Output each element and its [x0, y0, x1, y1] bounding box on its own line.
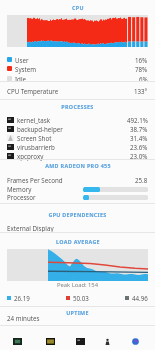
staticText: Peak Load: 154	[57, 281, 99, 289]
staticText: 492.1%	[127, 116, 148, 124]
staticText: 23.6%	[130, 143, 148, 151]
button[interactable]: xpcproxy	[0, 151, 155, 160]
staticText: AMD RADEON PRO 455	[45, 162, 111, 169]
staticText: Screen Shot	[17, 134, 52, 142]
button[interactable]: Processor	[0, 193, 155, 201]
button[interactable]: 24 minutes	[0, 313, 155, 322]
button[interactable]: Terminal	[10, 334, 24, 348]
button[interactable]: Frames Per Second	[0, 175, 155, 184]
staticText: 25.8	[135, 176, 148, 184]
staticText: System	[15, 65, 37, 73]
staticText: xpcproxy	[17, 152, 44, 160]
button[interactable]: Screen Shot	[0, 133, 155, 142]
staticText: CPU Temperature	[7, 87, 59, 95]
staticText: 24 minutes	[7, 314, 40, 322]
staticText: 23.0%	[130, 152, 148, 160]
staticText: 44.96	[132, 294, 148, 302]
staticText: GPU DEPENDENCIES	[48, 211, 107, 218]
button[interactable]: Memory	[0, 185, 155, 193]
staticText: CPU	[72, 4, 84, 11]
button[interactable]: CPU Temperature	[0, 86, 155, 95]
button[interactable]: virusbarrierb	[0, 142, 155, 151]
staticText: virusbarrierb	[17, 143, 55, 151]
staticText: 6%	[139, 75, 148, 83]
button[interactable]: User	[0, 55, 155, 64]
staticText: Processor	[7, 193, 36, 201]
button[interactable]: kernel_task	[0, 115, 155, 124]
staticText: UPTIME	[66, 309, 89, 316]
staticText: PROCESSES	[61, 103, 94, 110]
staticText: 50.03	[73, 294, 89, 302]
button[interactable]: backupd-helper	[0, 124, 155, 133]
button[interactable]: Browser	[128, 334, 142, 348]
staticText: User	[15, 56, 29, 64]
button[interactable]: External Display	[0, 223, 155, 232]
button[interactable]: Utility	[100, 334, 114, 348]
staticText: backupd-helper	[17, 125, 63, 133]
staticText: Memory	[7, 185, 32, 193]
staticText: 133°	[134, 87, 148, 95]
staticText: LOAD AVERAGE	[56, 238, 100, 245]
staticText: 78%	[135, 65, 148, 73]
staticText: Frames Per Second	[7, 176, 63, 184]
staticText: 38.7%	[130, 125, 148, 133]
button[interactable]: Editor	[43, 334, 57, 348]
staticText: 31.4%	[130, 134, 148, 142]
staticText: External Display	[7, 224, 54, 232]
staticText: 16%	[135, 56, 148, 64]
staticText: kernel_task	[17, 116, 50, 124]
staticText: 26.19	[14, 294, 30, 302]
button[interactable]: Idle	[0, 74, 155, 83]
staticText: Idle	[15, 75, 26, 83]
button[interactable]: Console	[73, 334, 87, 348]
button[interactable]: System	[0, 64, 155, 73]
